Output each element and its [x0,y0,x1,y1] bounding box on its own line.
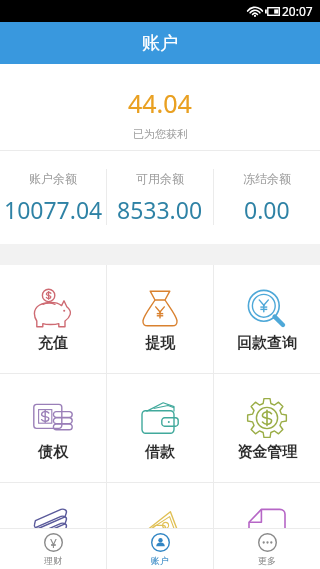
staticText: 借款 [145,443,175,462]
button[interactable]: 红包 [107,483,213,528]
staticText: 资金管理 [237,443,297,462]
button[interactable]: 冻结余额 [214,150,320,244]
staticText: 已为您获利 [133,127,188,141]
button[interactable]: 借款 [107,374,213,482]
button[interactable]: 更多 [214,529,320,569]
staticText: 充值 [38,334,68,353]
staticText: 冻结余额 [243,171,291,186]
staticText: 理财 [44,555,62,566]
button[interactable]: 账户 [0,22,320,64]
button[interactable]: 账户余额 [0,150,106,244]
staticText: 账户 [151,555,169,566]
staticText: 债权 [38,443,68,462]
button[interactable]: 提现 [107,265,213,373]
staticText: 44.04 [128,86,192,120]
button[interactable]: 卡券 [0,483,106,528]
staticText: 20:07 [282,3,313,19]
staticText: 可用余额 [136,171,184,186]
staticText: 更多 [258,555,276,566]
button[interactable]: 回款查询 [214,265,320,373]
button[interactable]: 账户 [107,529,213,569]
staticText: 8533.00 [117,194,203,225]
button[interactable]: 债权 [0,374,106,482]
staticText: 回款查询 [237,334,297,353]
button[interactable]: ¥ [0,529,106,569]
staticText: ¥ [50,535,57,551]
staticText: 账户 [142,32,178,55]
staticText: 10077.04 [4,194,103,225]
button[interactable]: 资金管理 [214,374,320,482]
staticText: 0.00 [244,194,290,225]
button[interactable]: 充值 [0,265,106,373]
button[interactable]: 合同 [214,483,320,528]
staticText: 提现 [145,334,175,353]
staticText: 账户余额 [29,171,77,186]
button[interactable]: 可用余额 [107,150,213,244]
